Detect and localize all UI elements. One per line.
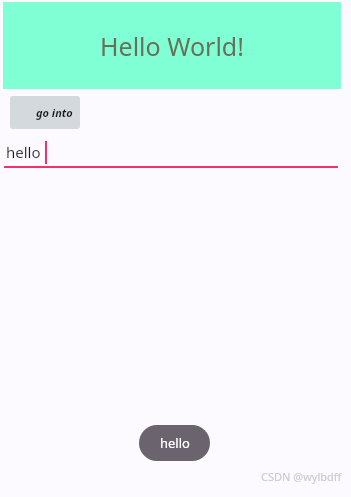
button[interactable]: hello bbox=[139, 425, 210, 461]
button[interactable]: go into bbox=[10, 96, 80, 129]
staticText: CSDN @wylbdff bbox=[261, 469, 342, 484]
staticText: go into bbox=[36, 105, 73, 120]
staticText: hello bbox=[160, 434, 190, 452]
staticText: Hello World! bbox=[100, 29, 244, 63]
button[interactable]: hello bbox=[4, 136, 338, 168]
staticText: hello bbox=[6, 142, 41, 162]
